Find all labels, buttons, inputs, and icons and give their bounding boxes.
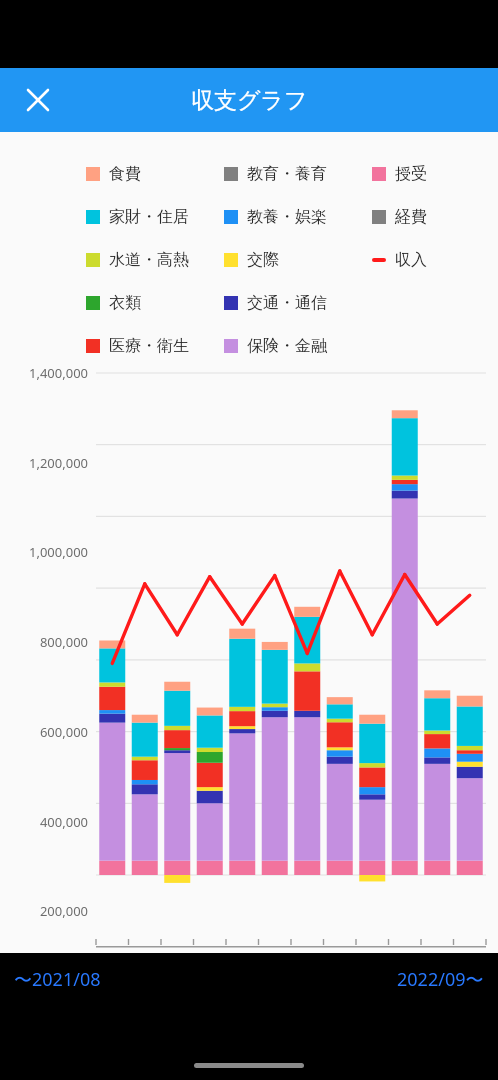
button[interactable]: 交際 <box>224 250 372 270</box>
button[interactable]: 家財・住居 <box>86 207 224 227</box>
button[interactable]: 医療・衛生 <box>86 336 224 356</box>
staticText: 1,400,000 <box>8 364 88 382</box>
staticText: 8月 <box>458 951 481 970</box>
staticText: 2022/09〜 <box>397 967 484 992</box>
staticText: 800,000 <box>8 633 88 651</box>
staticText: 交際 <box>247 250 279 270</box>
button[interactable]: 保険・金融 <box>224 336 372 356</box>
button[interactable]: 経費 <box>372 207 482 227</box>
button[interactable]: 教養・娯楽 <box>224 207 372 227</box>
staticText: 7月 <box>425 951 448 970</box>
staticText: 収入 <box>395 250 427 270</box>
button[interactable]: 授受 <box>372 164 482 184</box>
staticText: 1月 <box>229 951 252 970</box>
staticText: 9月 <box>101 951 124 970</box>
staticText: 12月 <box>193 951 224 970</box>
staticText: 6月 <box>392 951 415 970</box>
staticText: 200,000 <box>8 902 88 920</box>
button[interactable]: 教育・養育 <box>224 164 372 184</box>
staticText: 食費 <box>109 164 141 184</box>
staticText: 家財・住居 <box>109 207 189 227</box>
button[interactable]: 〜2021/08 <box>14 967 101 992</box>
button[interactable]: 交通・通信 <box>224 293 372 313</box>
staticText: 衣類 <box>109 293 141 313</box>
staticText: 教養・娯楽 <box>247 207 327 227</box>
button[interactable]: 収入 <box>372 250 482 270</box>
staticText: 4月 <box>326 951 349 970</box>
staticText: 水道・高熱 <box>109 250 189 270</box>
staticText: 3月 <box>293 951 316 970</box>
button[interactable]: 2022/09〜 <box>397 967 484 992</box>
staticText: 収支グラフ <box>191 86 308 115</box>
staticText: 経費 <box>395 207 427 227</box>
staticText: 10月 <box>129 951 160 970</box>
staticText: 〜2021/08 <box>14 967 101 992</box>
button[interactable]: 食費 <box>86 164 224 184</box>
staticText: 1,000,000 <box>8 543 88 561</box>
staticText: 教育・養育 <box>247 164 327 184</box>
button[interactable]: Close <box>14 76 62 124</box>
staticText: 医療・衛生 <box>109 336 189 356</box>
staticText: 保険・金融 <box>247 336 327 356</box>
staticText: 交通・通信 <box>247 293 327 313</box>
button[interactable]: 水道・高熱 <box>86 250 224 270</box>
staticText: 600,000 <box>8 723 88 741</box>
staticText: 授受 <box>395 164 427 184</box>
staticText: 1,200,000 <box>8 454 88 472</box>
button[interactable]: 衣類 <box>86 293 224 313</box>
staticText: 400,000 <box>8 813 88 831</box>
staticText: 11月 <box>161 951 192 970</box>
staticText: 5月 <box>359 951 382 970</box>
staticText: 2月 <box>261 951 284 970</box>
